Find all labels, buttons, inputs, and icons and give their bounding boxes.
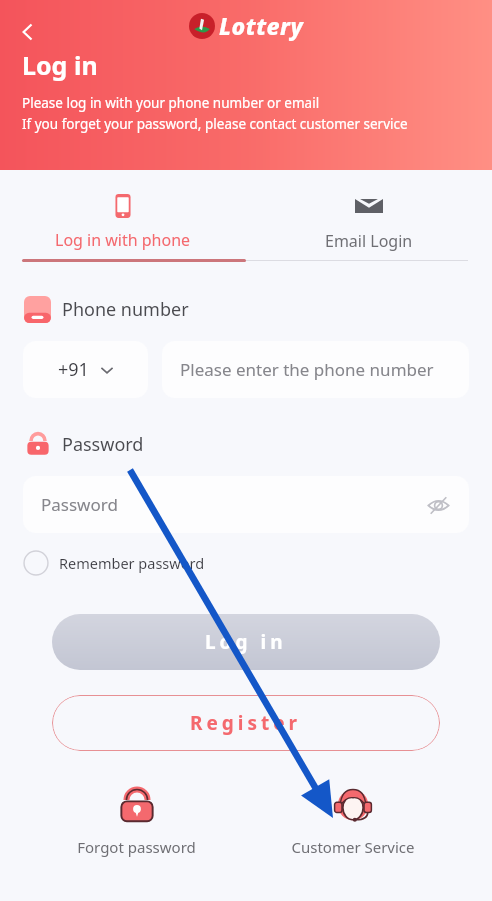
staticText: If you forget your password, please cont… (22, 115, 408, 133)
staticText: Please log in with your phone number or … (22, 94, 320, 112)
button[interactable]: Email Login (246, 170, 492, 274)
staticText: Please enter the phone number (180, 358, 434, 381)
staticText: Forgot password (77, 837, 196, 857)
staticText: Password (62, 432, 144, 457)
staticText: Register (190, 710, 302, 736)
button[interactable]: Register (52, 695, 440, 751)
button[interactable]: Customer Service (273, 779, 433, 861)
staticText: Log in (205, 629, 287, 655)
staticText: Log in with phone (55, 229, 191, 251)
staticText: Phone number (62, 297, 189, 322)
button[interactable]: Log in (52, 614, 440, 670)
button[interactable]: Forgot password (59, 779, 214, 861)
button[interactable]: Log in with phone (0, 170, 246, 274)
staticText: Customer Service (291, 837, 415, 857)
staticText: +91 (58, 357, 89, 382)
button[interactable]: Password (23, 476, 469, 533)
staticText: Lottery (219, 10, 304, 41)
staticText: Remember password (59, 553, 205, 573)
staticText: Email Login (325, 230, 413, 252)
staticText: Password (41, 493, 118, 516)
button[interactable]: Please enter the phone number (162, 341, 469, 398)
button[interactable]: Back (8, 12, 48, 52)
button[interactable]: Show password (421, 488, 455, 522)
button[interactable]: +91 (23, 341, 148, 398)
button[interactable]: Remember password (23, 550, 205, 576)
staticText: Log in (22, 48, 98, 82)
